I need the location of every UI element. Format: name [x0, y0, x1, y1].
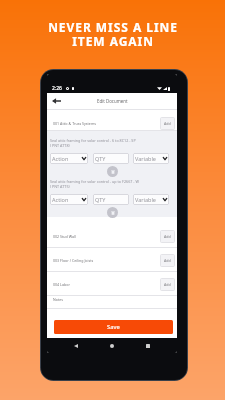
staticText: Edit Document [97, 98, 128, 104]
button[interactable]: Back [49, 94, 63, 108]
button[interactable]: Save [54, 320, 173, 334]
staticText: Add [164, 234, 171, 239]
staticText: Add [164, 258, 171, 263]
staticText: 003 Floor / Ceiling Joists [53, 258, 94, 263]
button[interactable]: Variable [135, 153, 167, 164]
staticText: Variable [135, 196, 156, 203]
button[interactable]: Back [69, 339, 83, 353]
staticText: Seal attic framing for solar control - u… [50, 179, 139, 189]
staticText: Seal attic framing for solar control - 6… [50, 138, 136, 148]
staticText: QTY [95, 196, 106, 203]
staticText: Notes [53, 297, 63, 302]
button[interactable]: Add [160, 230, 175, 243]
button[interactable]: Variable [135, 194, 167, 205]
button[interactable]: Action [52, 194, 86, 205]
button[interactable]: Recent apps [141, 339, 155, 353]
button[interactable]: Delete line item [107, 207, 118, 218]
staticText: 001 Attic & Truss Systems [53, 121, 96, 126]
button[interactable]: QTY [95, 194, 127, 205]
button[interactable]: Add [160, 254, 175, 267]
staticText: 004 Labor [53, 282, 70, 287]
button[interactable]: Home [105, 339, 119, 353]
staticText: Add [164, 121, 171, 126]
button[interactable]: Add [160, 278, 175, 291]
staticText: Save [107, 323, 120, 331]
staticText: 002 Stud Wall [53, 234, 76, 239]
staticText: Add [164, 282, 171, 287]
button[interactable]: QTY [95, 153, 127, 164]
staticText: QTY [95, 155, 106, 162]
staticText: 2:26 [52, 85, 62, 92]
staticText: Variable [135, 155, 156, 162]
staticText: Action [52, 155, 69, 162]
button[interactable]: Delete line item [107, 166, 118, 177]
staticText: Action [52, 196, 69, 203]
staticText: NEVER MISS A LINE ITEM AGAIN [48, 19, 178, 49]
button[interactable]: Add [160, 117, 175, 130]
button[interactable]: Action [52, 153, 86, 164]
